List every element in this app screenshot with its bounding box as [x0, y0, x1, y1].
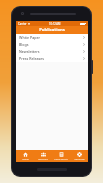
button[interactable]: NEWS ROOM: [52, 150, 70, 162]
staticText: Newsletters: [19, 49, 40, 54]
button[interactable]: CONTACT: [34, 150, 52, 162]
staticText: SETTINGS: [74, 158, 85, 161]
button[interactable]: HOME: [16, 150, 34, 162]
button[interactable]: SETTINGS: [70, 150, 88, 162]
staticText: HOME: [22, 158, 29, 161]
staticText: Publications: [39, 27, 65, 33]
button[interactable]: Press Releases: [16, 55, 88, 62]
button[interactable]: Blogs: [16, 41, 88, 48]
staticText: NEWS ROOM: [54, 158, 68, 161]
staticText: Blogs: [19, 42, 29, 47]
staticText: CONTACT: [38, 158, 48, 161]
staticText: 10:12 AM: [49, 22, 61, 26]
button[interactable]: Newsletters: [16, 48, 88, 55]
staticText: Press Releases: [19, 56, 45, 61]
staticText: Carrier: [18, 22, 27, 26]
button[interactable]: White Paper: [16, 34, 88, 41]
staticText: White Paper: [19, 35, 41, 40]
